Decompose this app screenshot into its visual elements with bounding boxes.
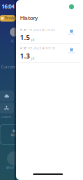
button[interactable]: Eco status: [68, 3, 75, 10]
button[interactable]: SEP 16 2023 AT 10:42: [16, 25, 80, 43]
staticText: Reorder: [68, 52, 75, 54]
staticText: Ready: [5, 17, 14, 20]
button[interactable]: Add: [0, 124, 18, 144]
staticText: SEP 09 2023 AT 09:18: [23, 46, 55, 50]
staticText: Current: [1, 64, 15, 69]
staticText: 1.5: [20, 33, 30, 42]
staticText: gal: [31, 38, 35, 42]
staticText: Reorder: [68, 33, 75, 35]
staticText: Sched: [6, 166, 14, 169]
button[interactable]: SEP 09 2023 AT 09:18: [16, 44, 80, 62]
staticText: History: [20, 14, 38, 21]
staticText: Hi: [11, 40, 14, 43]
staticText: SEP 16 2023 AT 10:42: [23, 28, 55, 31]
staticText: 1.3: [20, 51, 30, 60]
staticText: gal: [31, 57, 35, 60]
staticText: Add: [11, 133, 17, 137]
staticText: Custom: [0, 115, 10, 118]
staticText: 16:04: [1, 3, 14, 10]
